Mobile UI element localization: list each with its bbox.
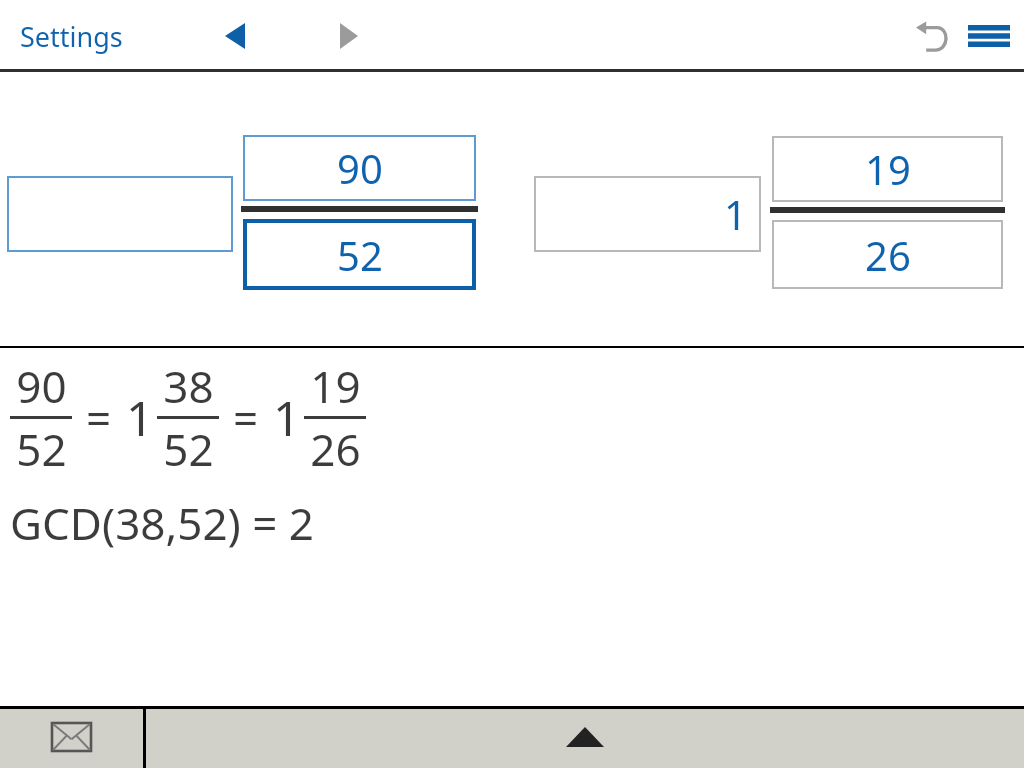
staticText: 1: [126, 385, 154, 450]
staticText: =: [86, 388, 112, 448]
staticText: 19: [865, 142, 911, 196]
staticText: 90: [337, 141, 383, 195]
staticText: 1: [273, 385, 301, 450]
staticText: 26: [310, 419, 361, 479]
staticText: 38: [163, 356, 214, 416]
button[interactable]: [7, 176, 233, 252]
button[interactable]: 90: [243, 135, 476, 201]
staticText: 1: [724, 187, 747, 241]
button[interactable]: Next: [326, 13, 372, 59]
button[interactable]: 1: [534, 176, 761, 252]
staticText: 52: [16, 419, 67, 479]
button[interactable]: Previous: [212, 13, 258, 59]
staticText: 52: [337, 228, 383, 282]
staticText: Settings: [20, 18, 123, 55]
button[interactable]: 26: [772, 220, 1003, 289]
button[interactable]: Undo: [908, 11, 958, 61]
staticText: 26: [865, 228, 911, 282]
staticText: 19: [310, 356, 361, 416]
button[interactable]: Menu: [961, 8, 1017, 64]
staticText: =: [233, 388, 259, 448]
button[interactable]: Mail: [0, 706, 143, 768]
button[interactable]: Settings: [14, 12, 129, 61]
staticText: 52: [163, 419, 214, 479]
staticText: 90: [16, 356, 67, 416]
button[interactable]: 19: [772, 136, 1003, 202]
button[interactable]: 52: [243, 219, 476, 290]
button[interactable]: Expand: [146, 706, 1024, 768]
staticText: GCD(38,52) = 2: [10, 493, 315, 553]
